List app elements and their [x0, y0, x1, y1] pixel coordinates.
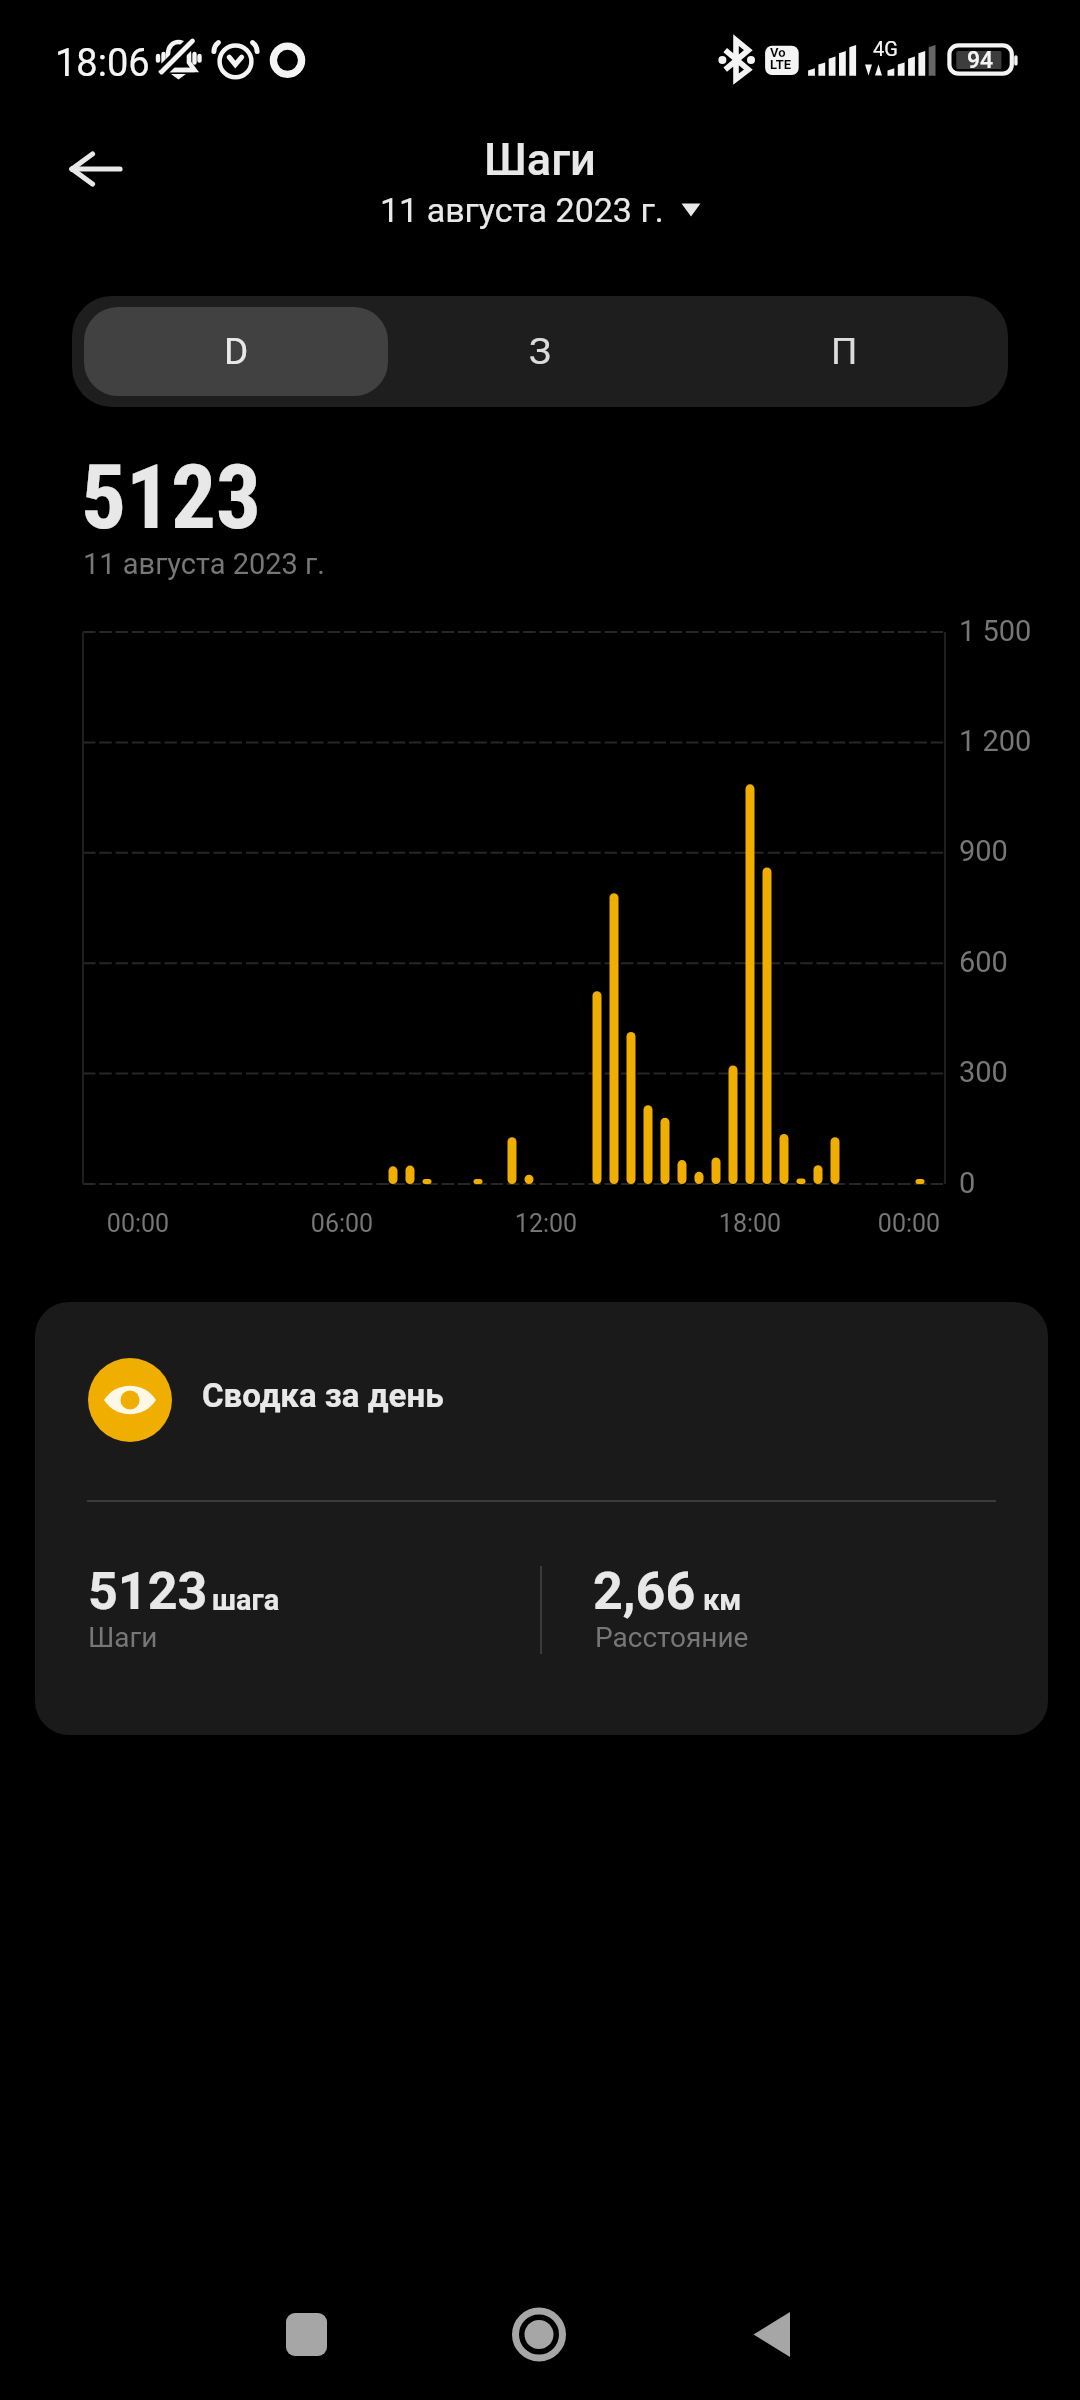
staticText: D [224, 330, 249, 373]
staticText: 11 августа 2023 г. [380, 190, 664, 230]
staticText: 2,66 [593, 1561, 696, 1622]
staticText: З [529, 330, 551, 373]
staticText: 00:00 [78, 1209, 198, 1238]
staticText: 11 августа 2023 г. [83, 547, 325, 581]
staticText: Шаги [88, 1621, 158, 1654]
staticText: Сводка за день [202, 1376, 444, 1415]
staticText: 12:00 [486, 1209, 606, 1238]
staticText: 1 200 [959, 724, 1032, 758]
staticText: П [831, 330, 858, 373]
staticText: 900 [959, 834, 1008, 868]
staticText: 06:00 [282, 1209, 402, 1238]
staticText: км [703, 1583, 742, 1617]
button[interactable]: 11 августа 2023 г. [374, 188, 707, 232]
staticText: 18:06 [55, 41, 150, 86]
staticText: Vo [770, 45, 786, 60]
staticText: LTE [770, 57, 792, 72]
button[interactable]: Назад [46, 119, 146, 219]
staticText: шага [212, 1583, 280, 1617]
staticText: 00:00 [849, 1209, 969, 1238]
staticText: 4G [873, 37, 898, 60]
staticText: 18:00 [690, 1209, 810, 1238]
button[interactable]: D [84, 307, 388, 396]
staticText: 600 [959, 945, 1008, 979]
button[interactable]: Recents [256, 2284, 356, 2384]
staticText: 5123 [81, 445, 262, 549]
staticText: 94 [967, 47, 994, 74]
staticText: Шаги [484, 133, 596, 186]
staticText: Расстояние [595, 1621, 749, 1654]
button[interactable]: Home [489, 2284, 589, 2384]
staticText: 1 500 [959, 614, 1032, 648]
button[interactable]: З [388, 307, 692, 396]
staticText: 5123 [88, 1561, 208, 1622]
staticText: 0 [959, 1166, 976, 1200]
button[interactable]: П [692, 307, 996, 396]
staticText: 300 [959, 1055, 1008, 1089]
button[interactable]: Back [722, 2284, 822, 2384]
button[interactable]: Сводка за день [35, 1302, 1048, 1735]
